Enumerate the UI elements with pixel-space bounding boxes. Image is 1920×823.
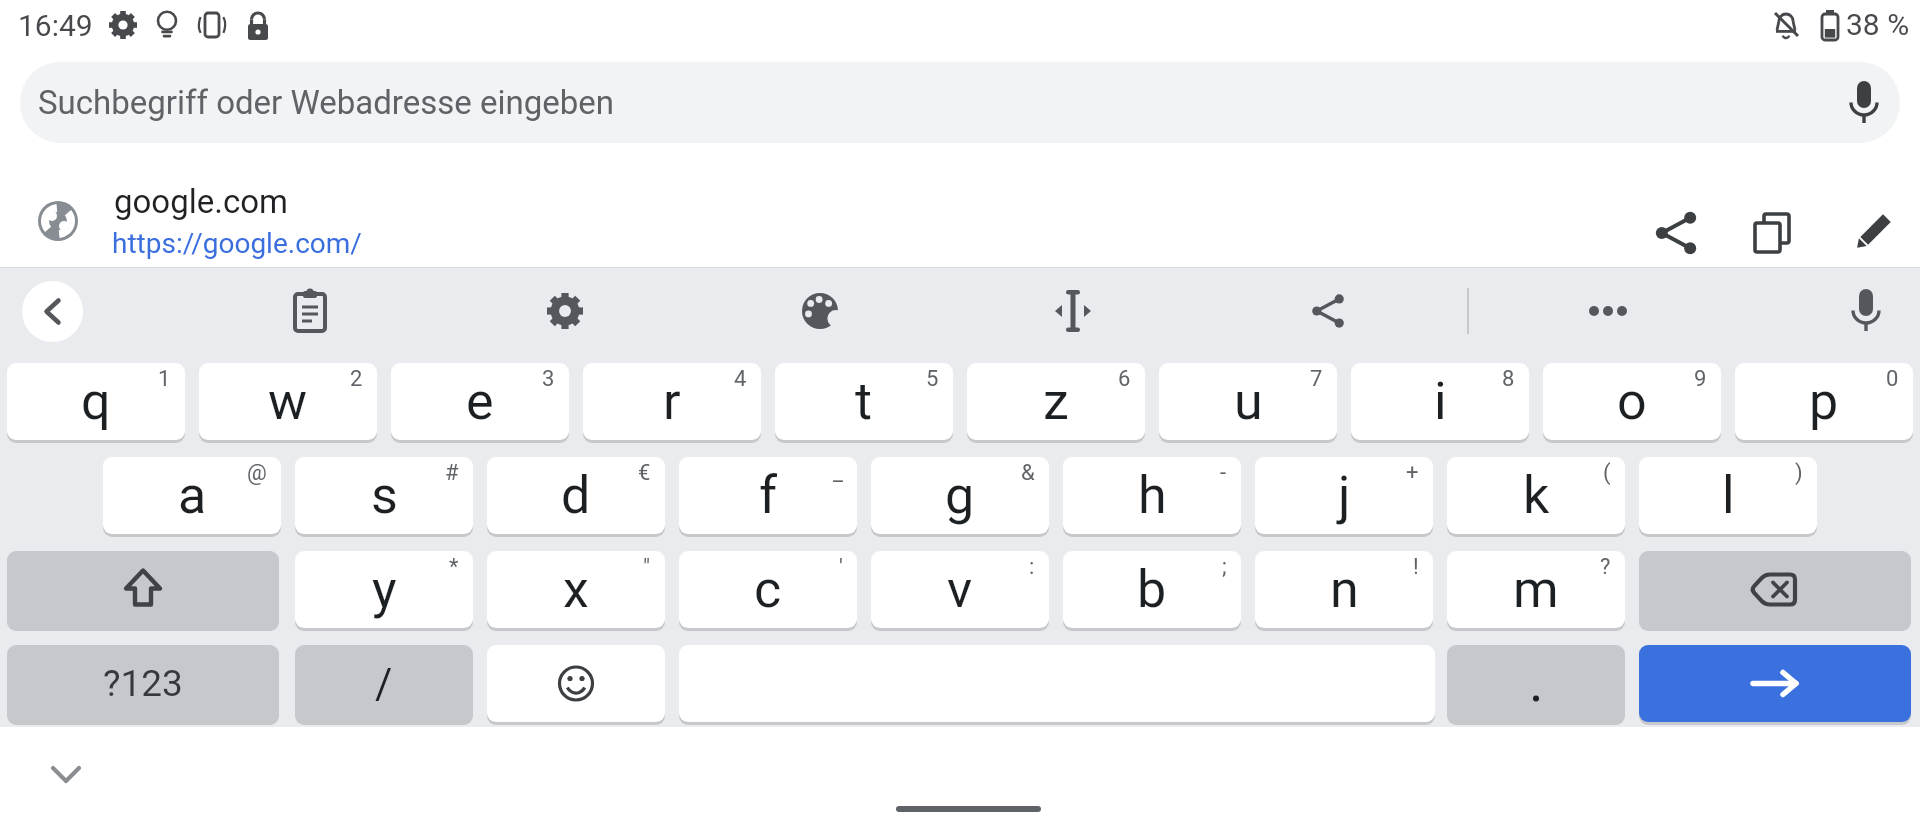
staticText: d [561, 465, 591, 526]
staticText: x [563, 559, 589, 620]
button[interactable] [1840, 79, 1888, 127]
staticText: e [466, 371, 494, 432]
staticText: " [643, 554, 651, 580]
button[interactable]: h [1063, 457, 1241, 534]
button[interactable]: q [7, 363, 185, 440]
staticText: google.com [114, 182, 288, 221]
button[interactable] [1652, 209, 1700, 257]
button[interactable] [487, 645, 665, 722]
staticText: v [947, 559, 973, 620]
staticText: 38 % [1846, 7, 1910, 42]
button[interactable]: Suchbegriff oder Webadresse eingeben [20, 62, 1900, 143]
button[interactable] [22, 281, 83, 342]
staticText: t [855, 371, 873, 432]
staticText: z [1043, 371, 1069, 432]
staticText: g [945, 465, 975, 526]
staticText: / [375, 659, 393, 708]
button[interactable] [799, 290, 841, 332]
staticText: 1 [158, 366, 171, 392]
staticText: # [445, 460, 459, 486]
staticText: ?123 [103, 662, 183, 705]
button[interactable] [1309, 292, 1347, 330]
button[interactable] [1639, 645, 1911, 722]
staticText: 3 [542, 366, 555, 392]
staticText: * [449, 554, 459, 580]
button[interactable]: n [1255, 551, 1433, 628]
staticText: j [1338, 465, 1351, 526]
button[interactable]: e [391, 363, 569, 440]
button[interactable] [282, 283, 338, 339]
button[interactable] [1639, 551, 1911, 628]
staticText: ; [1222, 554, 1227, 580]
button[interactable] [7, 551, 279, 628]
staticText: y [372, 559, 397, 620]
button[interactable]: i [1351, 363, 1529, 440]
button[interactable] [1045, 283, 1101, 339]
staticText: & [1021, 460, 1035, 486]
staticText: w [268, 371, 308, 432]
button[interactable]: u [1159, 363, 1337, 440]
staticText: 4 [734, 366, 747, 392]
staticText: r [663, 371, 681, 432]
button[interactable] [1848, 209, 1896, 257]
button[interactable]: j [1255, 457, 1433, 534]
staticText: 9 [1694, 366, 1707, 392]
button[interactable]: b [1063, 551, 1241, 628]
staticText: f [759, 465, 778, 526]
staticText: l [1722, 465, 1735, 526]
button[interactable]: a [103, 457, 281, 534]
staticText: 8 [1502, 366, 1515, 392]
staticText: u [1234, 371, 1263, 432]
button[interactable] [1748, 209, 1796, 257]
button[interactable] [1580, 283, 1636, 339]
staticText: _ [833, 460, 843, 486]
staticText: https://google.com/ [112, 227, 362, 260]
button[interactable] [1447, 645, 1625, 722]
staticText: ! [1413, 554, 1419, 580]
staticText: 16:49 [18, 8, 93, 43]
button[interactable]: d [487, 457, 665, 534]
button[interactable]: x [487, 551, 665, 628]
staticText: Suchbegriff oder Webadresse eingeben [38, 83, 614, 122]
staticText: b [1137, 559, 1167, 620]
staticText: n [1330, 559, 1359, 620]
button[interactable]: c [679, 551, 857, 628]
button[interactable]: g [871, 457, 1049, 534]
button[interactable]: k [1447, 457, 1625, 534]
button[interactable]: l [1639, 457, 1817, 534]
button[interactable]: m [1447, 551, 1625, 628]
button[interactable] [1838, 283, 1894, 339]
button[interactable]: ?123 [7, 645, 279, 722]
button[interactable]: o [1543, 363, 1721, 440]
button[interactable] [0, 143, 1920, 267]
button[interactable]: r [583, 363, 761, 440]
staticText: 0 [1886, 366, 1899, 392]
staticText: s [371, 465, 398, 526]
button[interactable]: / [295, 645, 473, 722]
staticText: m [1513, 559, 1559, 620]
button[interactable]: w [199, 363, 377, 440]
staticText: + [1406, 460, 1419, 486]
button[interactable]: z [967, 363, 1145, 440]
staticText: 6 [1118, 366, 1131, 392]
staticText: : [1029, 554, 1035, 580]
staticText: 2 [350, 366, 363, 392]
staticText: ( [1603, 460, 1611, 486]
button[interactable]: f [679, 457, 857, 534]
staticText: a [178, 465, 207, 526]
button[interactable]: p [1735, 363, 1913, 440]
staticText: 7 [1310, 366, 1323, 392]
button[interactable]: y [295, 551, 473, 628]
staticText: 5 [926, 366, 939, 392]
button[interactable] [36, 745, 96, 805]
staticText: o [1617, 371, 1647, 432]
staticText: ' [839, 554, 843, 580]
staticText: i [1434, 371, 1447, 432]
staticText: € [638, 460, 651, 486]
staticText: q [81, 371, 111, 432]
button[interactable]: v [871, 551, 1049, 628]
button[interactable] [547, 293, 583, 329]
button[interactable]: t [775, 363, 953, 440]
button[interactable]: s [295, 457, 473, 534]
